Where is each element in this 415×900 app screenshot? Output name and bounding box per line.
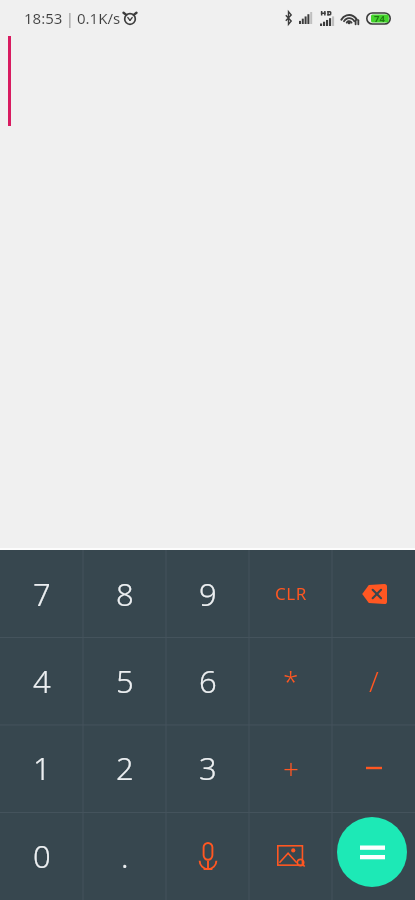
button[interactable]: 8 [83,550,166,637]
staticText: * [283,662,299,700]
button[interactable]: Minus [332,724,415,812]
button[interactable]: Backspace [332,550,415,637]
button[interactable]: Divide [332,637,415,724]
button[interactable]: 4 [0,637,83,724]
button[interactable]: Voice input [166,812,249,900]
other: Voice input [197,842,219,870]
staticText: 18:53 [24,8,63,28]
staticText: 0 [33,835,51,877]
staticText: . [121,835,129,877]
button[interactable]: Equals [337,817,407,887]
button[interactable]: Plus [249,724,332,812]
staticText: + [283,749,299,787]
other: Backspace [361,584,387,604]
staticText: / [369,662,379,700]
staticText: CLR [275,582,307,605]
staticText: 1 [33,747,51,789]
staticText: 4 [33,660,51,702]
staticText: 5 [116,660,134,702]
button[interactable]: Scan image [249,812,332,900]
other: Scan image [277,845,305,867]
button[interactable]: 5 [83,637,166,724]
staticText: 2 [116,747,134,789]
button[interactable]: Decimal point [83,812,166,900]
staticText: 7 [33,573,51,615]
staticText: 6 [199,660,217,702]
button[interactable]: 7 [0,550,83,637]
button[interactable]: 6 [166,637,249,724]
button[interactable]: 1 [0,724,83,812]
staticText: 8 [116,573,134,615]
button[interactable]: Expression input field [0,35,415,550]
staticText: 3 [199,747,217,789]
staticText: 0.1K/s [77,8,121,28]
staticText: 9 [199,573,217,615]
button[interactable]: Clear [249,550,332,637]
button[interactable]: Multiply [249,637,332,724]
button[interactable]: 0 [0,812,83,900]
button[interactable]: 3 [166,724,249,812]
button[interactable]: 2 [83,724,166,812]
staticText: 74 [374,12,385,25]
staticText: | [66,9,74,28]
button[interactable]: 9 [166,550,249,637]
